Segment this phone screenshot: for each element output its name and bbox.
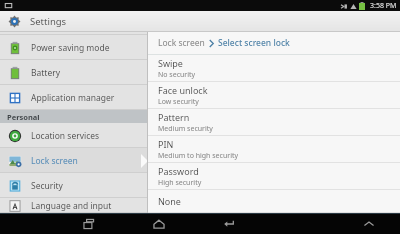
staticText: High security xyxy=(158,178,202,188)
button[interactable]: Pattern xyxy=(148,109,400,136)
button[interactable]: Back xyxy=(216,213,242,234)
button[interactable]: Password xyxy=(148,163,400,190)
button[interactable]: Battery xyxy=(0,60,148,85)
staticText: 3:58 PM xyxy=(370,1,397,11)
staticText: Location services xyxy=(31,130,100,142)
staticText: None xyxy=(158,195,181,207)
staticText: Security xyxy=(31,180,63,192)
staticText: Password xyxy=(158,165,199,177)
button[interactable]: Face unlock xyxy=(148,82,400,109)
staticText: No security xyxy=(158,70,196,80)
button[interactable]: Recent apps xyxy=(76,213,102,234)
staticText: Power saving mode xyxy=(31,42,110,54)
staticText: Face unlock xyxy=(158,84,208,96)
staticText: Medium to high security xyxy=(158,151,239,161)
button[interactable]: Location services xyxy=(0,123,148,148)
staticText: Medium security xyxy=(158,124,213,134)
staticText: Language and input xyxy=(31,200,112,212)
staticText: Swipe xyxy=(158,57,183,69)
button[interactable]: None xyxy=(148,190,400,213)
button[interactable]: Show hidden icons xyxy=(356,213,382,234)
staticText: Lock screen xyxy=(158,37,205,49)
button[interactable]: Application manager xyxy=(0,85,148,110)
button[interactable]: Home xyxy=(146,213,172,234)
staticText: Battery xyxy=(31,67,61,79)
staticText: PIN xyxy=(158,138,174,150)
staticText: Pattern xyxy=(158,111,190,123)
staticText: Low security xyxy=(158,97,199,107)
button[interactable]: Security xyxy=(0,173,148,198)
staticText: Application manager xyxy=(31,92,115,104)
button[interactable]: Lock screen xyxy=(0,148,148,173)
staticText: Settings xyxy=(30,15,67,28)
button[interactable]: PIN xyxy=(148,136,400,163)
staticText: Lock screen xyxy=(31,155,78,167)
button[interactable]: Power saving mode xyxy=(0,35,148,60)
button[interactable]: Swipe xyxy=(148,55,400,82)
staticText: Select screen lock xyxy=(218,37,290,49)
button[interactable]: Language and input xyxy=(0,198,148,213)
staticText: Personal xyxy=(7,112,40,122)
